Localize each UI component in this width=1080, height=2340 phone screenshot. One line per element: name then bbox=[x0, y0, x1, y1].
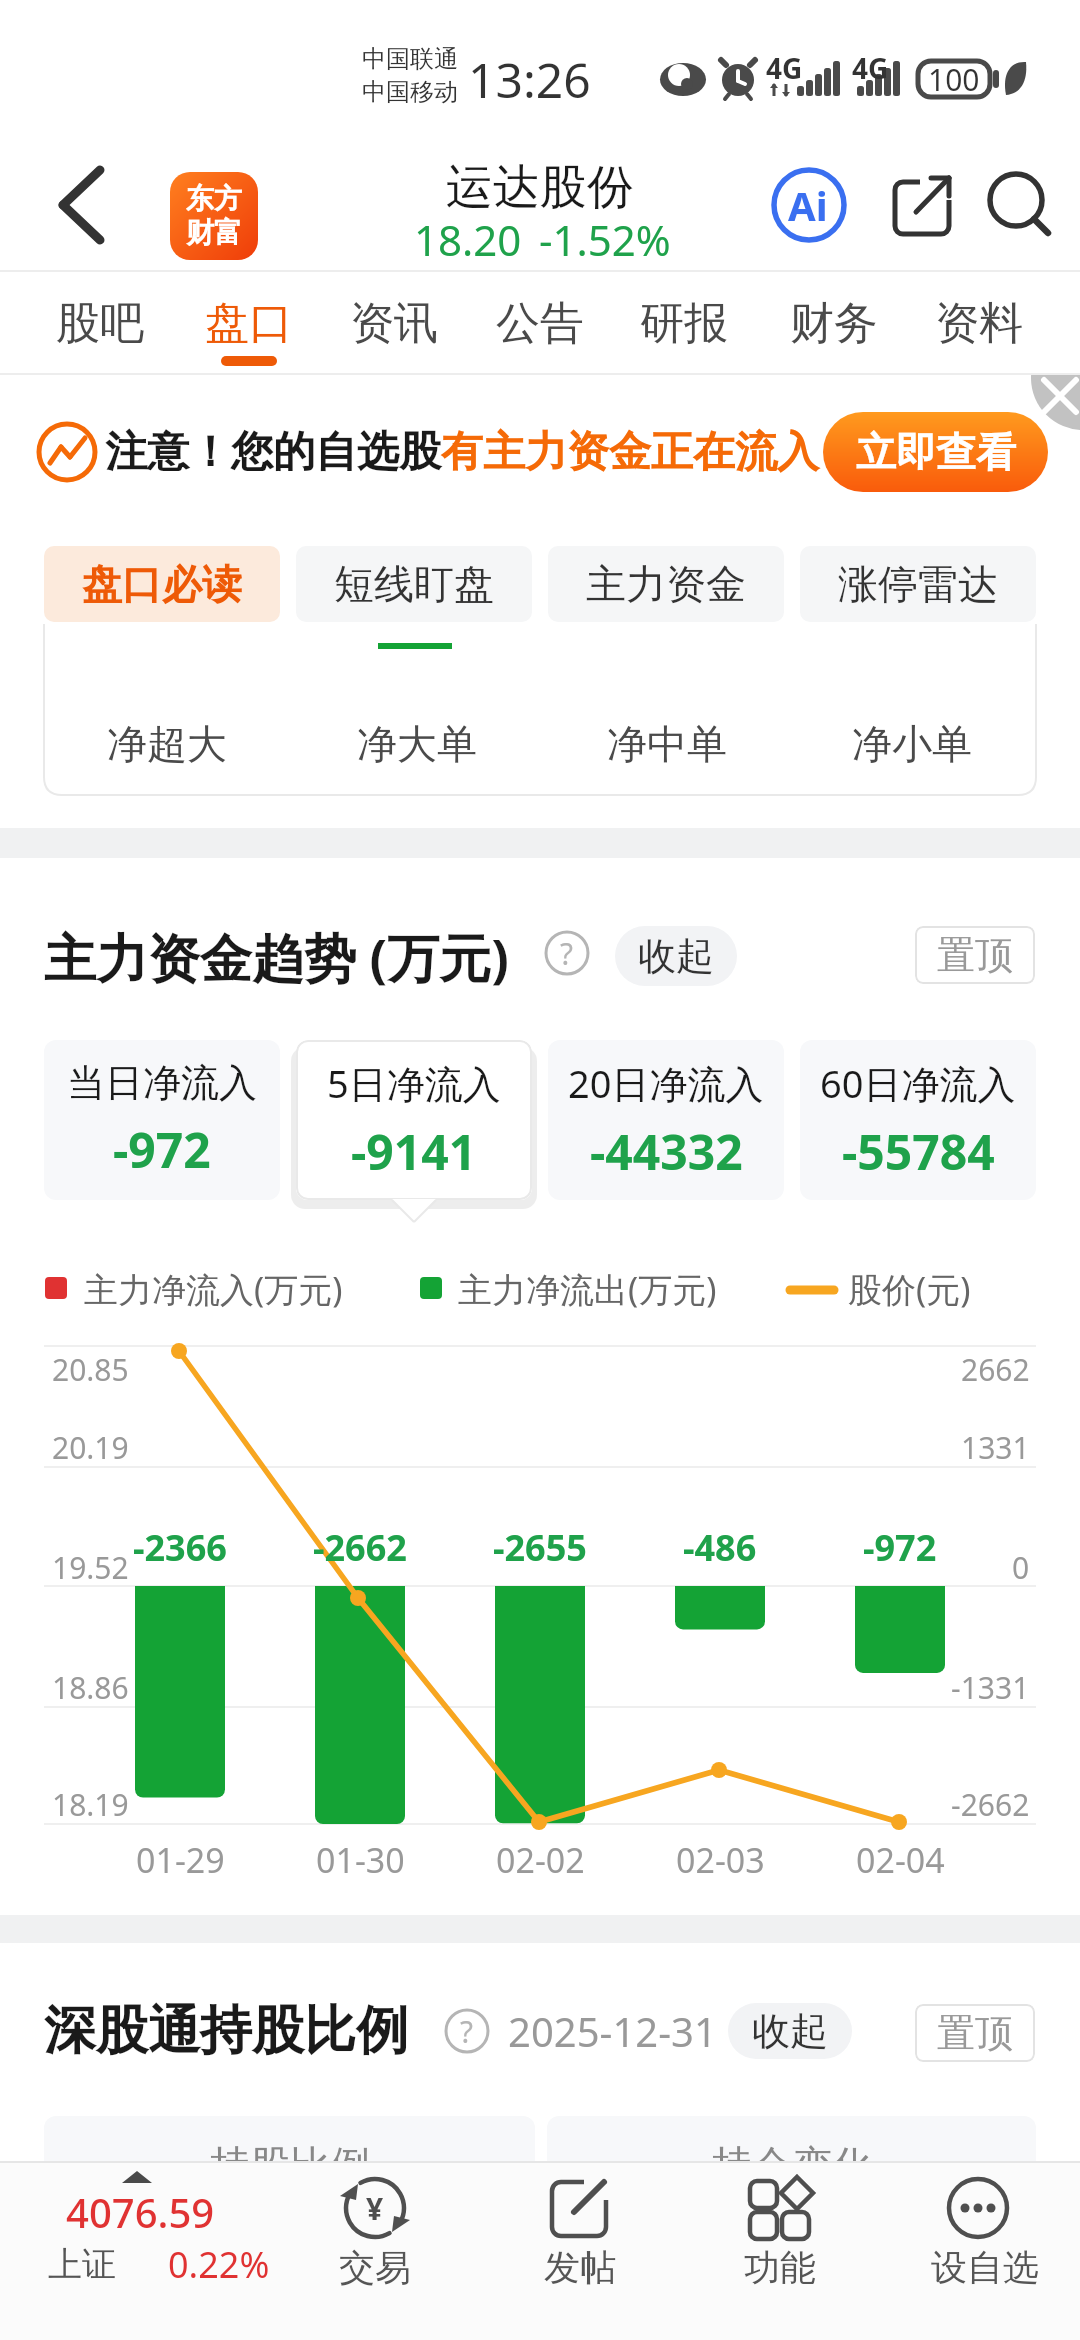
staticText: 20日净流入 bbox=[568, 1057, 764, 1109]
button[interactable]: 股吧 bbox=[40, 280, 160, 366]
staticText: -2662 bbox=[313, 1523, 407, 1572]
staticText: 收起 bbox=[638, 932, 714, 980]
staticText: 功能 bbox=[744, 2245, 816, 2290]
button[interactable]: 涨停雷达 bbox=[800, 546, 1036, 622]
button[interactable]: 收起 bbox=[728, 2003, 852, 2059]
staticText: 东方 财富 bbox=[186, 181, 242, 251]
staticText: 1331 bbox=[961, 1427, 1030, 1468]
staticText: -2662 bbox=[951, 1784, 1030, 1825]
staticText: 0.22% bbox=[168, 2240, 270, 2289]
button[interactable]: 20日净流入 bbox=[548, 1040, 784, 1200]
staticText: -486 bbox=[683, 1523, 757, 1572]
button[interactable]: 资讯 bbox=[334, 280, 454, 366]
staticText: 设自选 bbox=[931, 2245, 1039, 2290]
staticText: -972 bbox=[863, 1523, 937, 1572]
staticText: 02-03 bbox=[676, 1837, 765, 1883]
staticText: 立即查看 bbox=[856, 427, 1016, 477]
button[interactable]: 置顶 bbox=[915, 2004, 1035, 2062]
staticText: -2655 bbox=[493, 1523, 587, 1572]
button[interactable] bbox=[40, 160, 130, 250]
staticText: 净小单 bbox=[852, 719, 972, 769]
button[interactable]: 5日净流入 bbox=[296, 1040, 532, 1200]
staticText: 2025-12-31 bbox=[508, 2004, 717, 2058]
staticText: 4G bbox=[852, 49, 889, 87]
staticText: 持股比例 bbox=[210, 2140, 370, 2190]
button[interactable]: 交易 bbox=[300, 2166, 450, 2290]
staticText: 净超大 bbox=[107, 719, 227, 769]
staticText: 当日净流入 bbox=[67, 1059, 257, 1107]
staticText: 19.52 bbox=[52, 1547, 129, 1588]
button[interactable]: 财务 bbox=[774, 280, 894, 366]
button[interactable]: 60日净流入 bbox=[800, 1040, 1036, 1200]
button[interactable]: 短线盯盘 bbox=[296, 546, 532, 622]
staticText: 研报 bbox=[640, 296, 728, 351]
staticText: 02-02 bbox=[496, 1837, 585, 1883]
staticText: -9141 bbox=[351, 1119, 477, 1184]
button[interactable]: 主力资金 bbox=[548, 546, 784, 622]
staticText: 交易 bbox=[339, 2245, 411, 2290]
staticText: 100 bbox=[928, 59, 980, 100]
staticText: 资讯 bbox=[350, 296, 438, 351]
button[interactable]: 立即查看 bbox=[823, 412, 1048, 492]
staticText: Ai bbox=[788, 178, 828, 232]
staticText: 上证 bbox=[48, 2243, 116, 2286]
button[interactable]: 收起 bbox=[615, 926, 737, 986]
staticText: 18.86 bbox=[52, 1667, 129, 1708]
staticText: -2366 bbox=[133, 1523, 227, 1572]
staticText: 收起 bbox=[752, 2007, 828, 2055]
staticText: ? bbox=[560, 933, 574, 974]
staticText: 净中单 bbox=[607, 719, 727, 769]
staticText: -1331 bbox=[951, 1667, 1030, 1708]
staticText: 主力资金 bbox=[586, 559, 746, 609]
staticText: 0 bbox=[1012, 1547, 1030, 1588]
button[interactable] bbox=[770, 167, 844, 241]
staticText: 公告 bbox=[496, 296, 584, 351]
staticText: 5日净流入 bbox=[327, 1057, 501, 1109]
staticText: 20.19 bbox=[52, 1427, 129, 1468]
staticText: 2662 bbox=[961, 1349, 1030, 1390]
button[interactable] bbox=[28, 2166, 278, 2296]
button[interactable]: 当日净流入 bbox=[44, 1040, 280, 1200]
staticText: 发帖 bbox=[544, 2245, 616, 2290]
button[interactable]: 置顶 bbox=[915, 926, 1035, 984]
staticText: 01-29 bbox=[136, 1837, 225, 1883]
button[interactable]: 公告 bbox=[480, 280, 600, 366]
staticText: 有主力资金正在流入 bbox=[441, 426, 819, 479]
staticText: 主力净流出(万元) bbox=[458, 1266, 717, 1312]
button[interactable]: 功能 bbox=[705, 2166, 855, 2290]
staticText: 中国移动 bbox=[362, 77, 458, 107]
button[interactable]: 资料 bbox=[919, 280, 1039, 366]
staticText: 02-04 bbox=[856, 1837, 945, 1883]
staticText: ¥ bbox=[366, 2188, 384, 2229]
staticText: 01-30 bbox=[316, 1837, 405, 1883]
staticText: 13:26 bbox=[468, 47, 591, 112]
button[interactable]: 设自选 bbox=[900, 2166, 1070, 2290]
staticText: 4G bbox=[766, 49, 803, 87]
button[interactable]: 研报 bbox=[624, 280, 744, 366]
staticText: 注意！您的自选股 bbox=[105, 426, 441, 479]
staticText: 净大单 bbox=[357, 719, 477, 769]
staticText: -1.52% bbox=[539, 211, 671, 268]
staticText: -55784 bbox=[842, 1119, 995, 1184]
staticText: 主力资金趋势 (万元) bbox=[44, 921, 509, 992]
staticText: 置顶 bbox=[937, 931, 1013, 979]
staticText: 中国联通 bbox=[362, 44, 458, 74]
staticText: 60日净流入 bbox=[820, 1057, 1016, 1109]
staticText: ? bbox=[460, 2011, 474, 2052]
button[interactable]: 东方 财富 bbox=[170, 172, 258, 260]
button[interactable] bbox=[1020, 375, 1080, 435]
staticText: 20.85 bbox=[52, 1349, 129, 1390]
button[interactable] bbox=[888, 170, 958, 240]
staticText: 财务 bbox=[790, 296, 878, 351]
staticText: 盘口 bbox=[205, 296, 293, 351]
staticText: 运达股份 bbox=[446, 158, 634, 217]
staticText: 股价(元) bbox=[848, 1266, 971, 1312]
button[interactable]: 盘口 bbox=[189, 280, 309, 366]
staticText: 资料 bbox=[935, 296, 1023, 351]
staticText: -972 bbox=[113, 1117, 211, 1182]
button[interactable]: 发帖 bbox=[505, 2166, 655, 2290]
button[interactable] bbox=[980, 168, 1050, 238]
staticText: 4076.59 bbox=[66, 2185, 215, 2239]
staticText: 主力净流入(万元) bbox=[84, 1266, 343, 1312]
button[interactable]: 盘口必读 bbox=[44, 546, 280, 622]
